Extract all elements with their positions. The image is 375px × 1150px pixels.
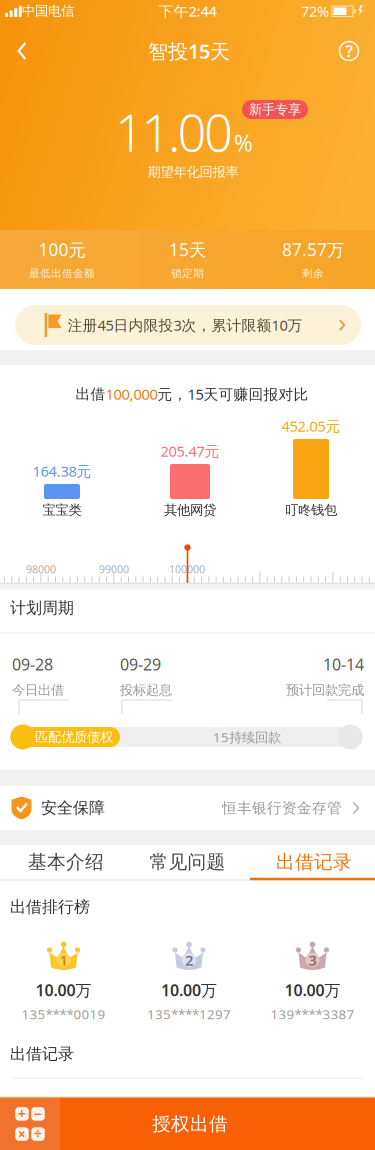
button[interactable]: 出借记录 <box>251 844 375 879</box>
staticText: − <box>34 1105 42 1123</box>
staticText: 期望年化回报率 <box>147 164 238 180</box>
staticText: 授权出借 <box>152 1112 228 1135</box>
staticText: 15持续回款 <box>213 728 281 746</box>
staticText: 09-29 <box>120 654 161 675</box>
staticText: 2 <box>185 950 193 970</box>
staticText: 164.38元 <box>32 461 91 481</box>
staticText: 100元 <box>38 238 85 261</box>
button[interactable]: Help <box>334 36 364 66</box>
staticText: 10.00万 <box>161 979 217 1001</box>
staticText: 投标起息 <box>120 682 172 698</box>
staticText: 205.47元 <box>160 441 219 461</box>
staticText: 下午2:44 <box>158 1 216 21</box>
staticText: 135****1297 <box>147 1005 231 1023</box>
staticText: 87.57万 <box>282 238 344 261</box>
staticText: 09-28 <box>12 654 53 675</box>
staticText: % <box>234 128 253 158</box>
staticText: 452.05元 <box>281 416 340 436</box>
staticText: 元，15天可赚回报对比 <box>157 384 308 404</box>
staticText: 安全保障 <box>41 798 105 818</box>
staticText: 139****3387 <box>270 1005 354 1023</box>
staticText: × <box>18 1125 26 1143</box>
staticText: 匹配优质债权 <box>35 729 113 745</box>
staticText: 剩余 <box>302 267 324 280</box>
staticText: 最低出借金额 <box>29 267 95 280</box>
staticText: 100,000 <box>105 384 157 404</box>
button[interactable]: 计算器 <box>0 1098 60 1150</box>
staticText: 宝宝类 <box>42 502 81 518</box>
staticText: 15天 <box>169 238 206 261</box>
staticText: 叮咚钱包 <box>285 502 337 518</box>
staticText: ? <box>345 40 352 62</box>
staticText: 99000 <box>99 562 129 576</box>
staticText: 常见问题 <box>149 850 225 873</box>
staticText: 3 <box>308 950 316 970</box>
staticText: 基本介绍 <box>28 850 104 873</box>
button[interactable]: 基本介绍 <box>3 844 128 879</box>
staticText: 新手专享 <box>249 101 301 118</box>
staticText: + <box>18 1105 26 1123</box>
staticText: 135****0019 <box>21 1005 105 1023</box>
button[interactable]: 注册45日内限投3次，累计限额10万 <box>15 305 361 345</box>
staticText: 出借记录 <box>10 1044 74 1064</box>
staticText: 100000 <box>169 562 205 576</box>
button[interactable]: 授权出借 <box>60 1098 375 1150</box>
staticText: 锁定期 <box>171 267 204 280</box>
staticText: 计划周期 <box>10 598 74 618</box>
staticText: 预计回款完成 <box>286 682 364 698</box>
staticText: 出借 <box>75 385 105 403</box>
button[interactable]: Back <box>2 31 42 71</box>
staticText: 中国电信 <box>22 3 74 19</box>
staticText: 出借记录 <box>276 850 352 873</box>
staticText: ÷ <box>34 1125 42 1143</box>
staticText: 10-14 <box>323 654 364 675</box>
staticText: 10.00万 <box>284 979 340 1001</box>
staticText: 恒丰银行资金存管 <box>222 799 342 817</box>
staticText: 10.00万 <box>35 979 91 1001</box>
staticText: 11.00 <box>115 98 233 166</box>
staticText: 出借排行榜 <box>10 897 90 917</box>
staticText: 今日出借 <box>12 682 64 698</box>
button[interactable]: 新手专享 <box>242 100 308 119</box>
button[interactable]: 安全保障 <box>0 786 375 830</box>
staticText: 其他网贷 <box>164 502 216 518</box>
staticText: 98000 <box>26 562 56 576</box>
button[interactable]: 常见问题 <box>125 844 250 879</box>
staticText: 智投15天 <box>148 38 230 64</box>
staticText: 72% <box>301 1 329 21</box>
staticText: 1 <box>59 950 67 970</box>
staticText: 注册45日内限投3次，累计限额10万 <box>67 315 302 335</box>
